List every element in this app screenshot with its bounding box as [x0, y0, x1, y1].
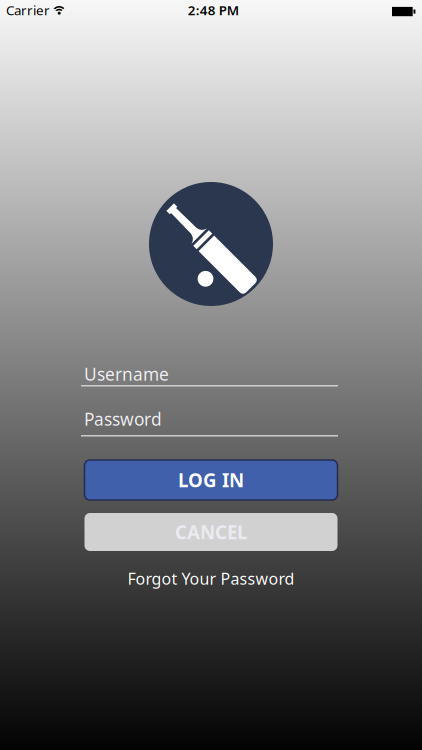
- staticText: Carrier: [6, 1, 50, 19]
- staticText: Password: [84, 407, 162, 430]
- button[interactable]: Forgot Your Password: [101, 565, 321, 591]
- staticText: LOG IN: [178, 468, 244, 492]
- button[interactable]: LOG IN: [84, 460, 337, 500]
- staticText: Username: [84, 362, 169, 385]
- staticText: Forgot Your Password: [127, 568, 294, 589]
- staticText: 2:48 PM: [188, 1, 239, 19]
- staticText: CANCEL: [175, 520, 247, 544]
- button[interactable]: Username: [81, 352, 338, 392]
- button[interactable]: CANCEL: [84, 513, 337, 551]
- button[interactable]: Password: [81, 398, 338, 442]
